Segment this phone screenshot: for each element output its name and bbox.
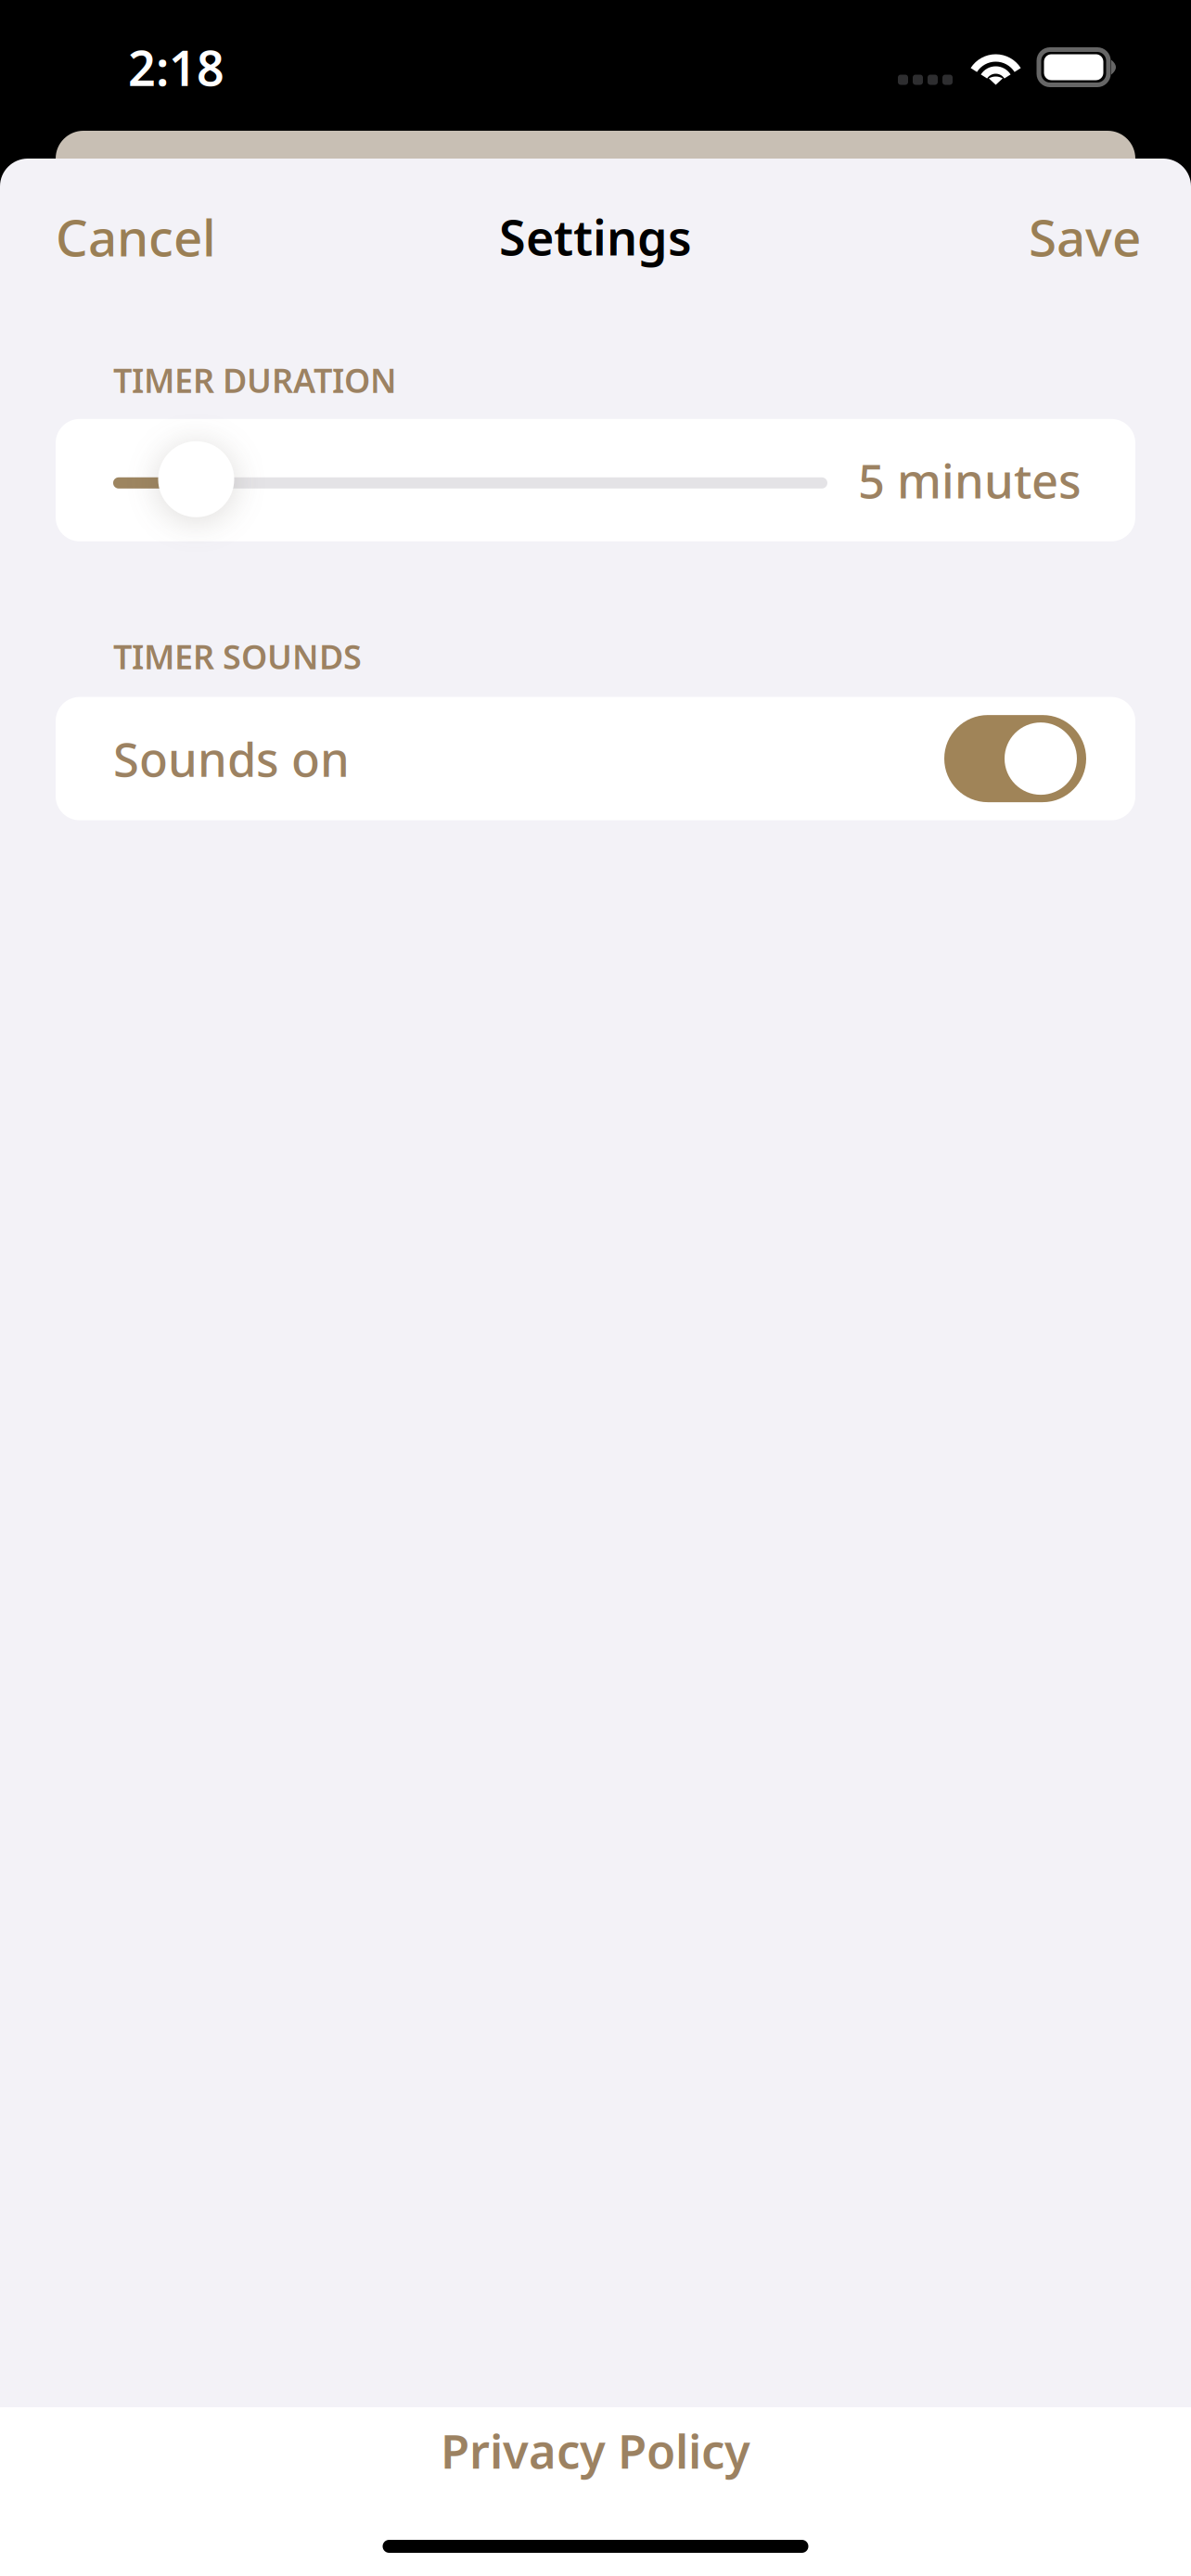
staticText: 2:18	[128, 35, 224, 99]
staticText: Privacy Policy	[441, 2419, 750, 2482]
button[interactable]: Sounds on	[0, 697, 1191, 820]
staticText: Settings	[499, 205, 692, 269]
staticText: TIMER SOUNDS	[113, 634, 362, 678]
staticText: TIMER DURATION	[113, 358, 397, 402]
staticText: Cancel	[56, 203, 216, 270]
button[interactable]: Cancel	[37, 185, 235, 289]
button[interactable]: Privacy Policy	[0, 2407, 1191, 2501]
staticText: Sounds on	[113, 727, 350, 790]
staticText: 5 minutes	[858, 449, 1082, 511]
staticText: Save	[1029, 203, 1141, 270]
button[interactable]: Save	[1010, 185, 1159, 289]
